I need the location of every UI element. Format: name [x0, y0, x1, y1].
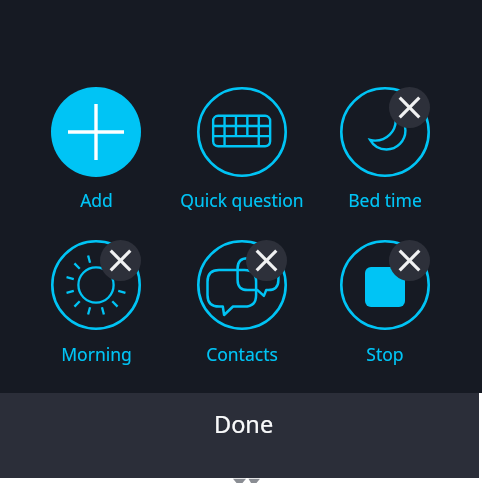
button[interactable]: Remove Bed time [313, 87, 457, 212]
button[interactable]: Remove Contacts [170, 240, 314, 366]
staticText: Contacts [206, 342, 278, 366]
staticText: Morning [61, 342, 132, 366]
button[interactable]: Done [0, 393, 479, 478]
button[interactable]: Remove Stop [389, 240, 430, 281]
button[interactable]: Remove Stop [313, 240, 457, 366]
staticText: Add [80, 188, 113, 212]
button[interactable]: Remove Morning [100, 240, 141, 281]
button[interactable]: Add [24, 87, 168, 212]
button[interactable]: Quick question [170, 87, 314, 212]
staticText: Stop [366, 342, 404, 366]
staticText: Quick question [180, 188, 304, 212]
button[interactable]: Remove Contacts [246, 240, 287, 281]
staticText: Done [214, 408, 274, 440]
button[interactable]: Remove Morning [24, 240, 168, 366]
staticText: Bed time [348, 188, 422, 212]
button[interactable]: Remove Bed time [389, 87, 430, 128]
